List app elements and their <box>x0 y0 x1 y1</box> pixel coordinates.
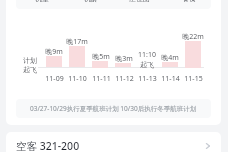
staticText: 晚5m <box>92 52 110 62</box>
staticText: 餐食 <box>182 0 196 3</box>
staticText: 11:10 <box>138 50 156 60</box>
button[interactable]: 空客 321-200 <box>6 132 221 152</box>
staticText: 晚9m <box>45 47 63 57</box>
staticText: 11-09 <box>45 74 64 84</box>
button[interactable]: 机龄 <box>66 0 115 3</box>
staticText: 晚17m <box>66 37 88 47</box>
staticText: 11-13 <box>138 74 157 84</box>
staticText: 11-14 <box>161 74 180 84</box>
button[interactable]: 餐食 <box>164 0 211 3</box>
staticText: 11-15 <box>184 74 203 84</box>
staticText: 晚3m <box>115 54 133 64</box>
staticText: 座位图 <box>129 0 150 3</box>
staticText: 起飞 <box>140 60 154 69</box>
other: Aircraft details <box>203 141 213 151</box>
staticText: 起飞 <box>23 65 37 74</box>
staticText: 空客 321-200 <box>16 139 80 152</box>
staticText: 机型 <box>35 0 49 3</box>
staticText: 11-10 <box>68 74 87 84</box>
staticText: 机龄 <box>84 0 98 3</box>
staticText: 晚22m <box>182 32 204 42</box>
staticText: 11-11 <box>92 74 111 84</box>
staticText: 03/27-10/29执行夏季航班计划 10/30后执行冬季航班计划 <box>30 104 197 113</box>
staticText: 计划 <box>23 56 37 65</box>
button[interactable]: 座位图 <box>115 0 164 3</box>
button[interactable]: 机型 <box>18 0 66 3</box>
staticText: 11-12 <box>115 74 134 84</box>
staticText: 晚4m <box>161 53 179 63</box>
